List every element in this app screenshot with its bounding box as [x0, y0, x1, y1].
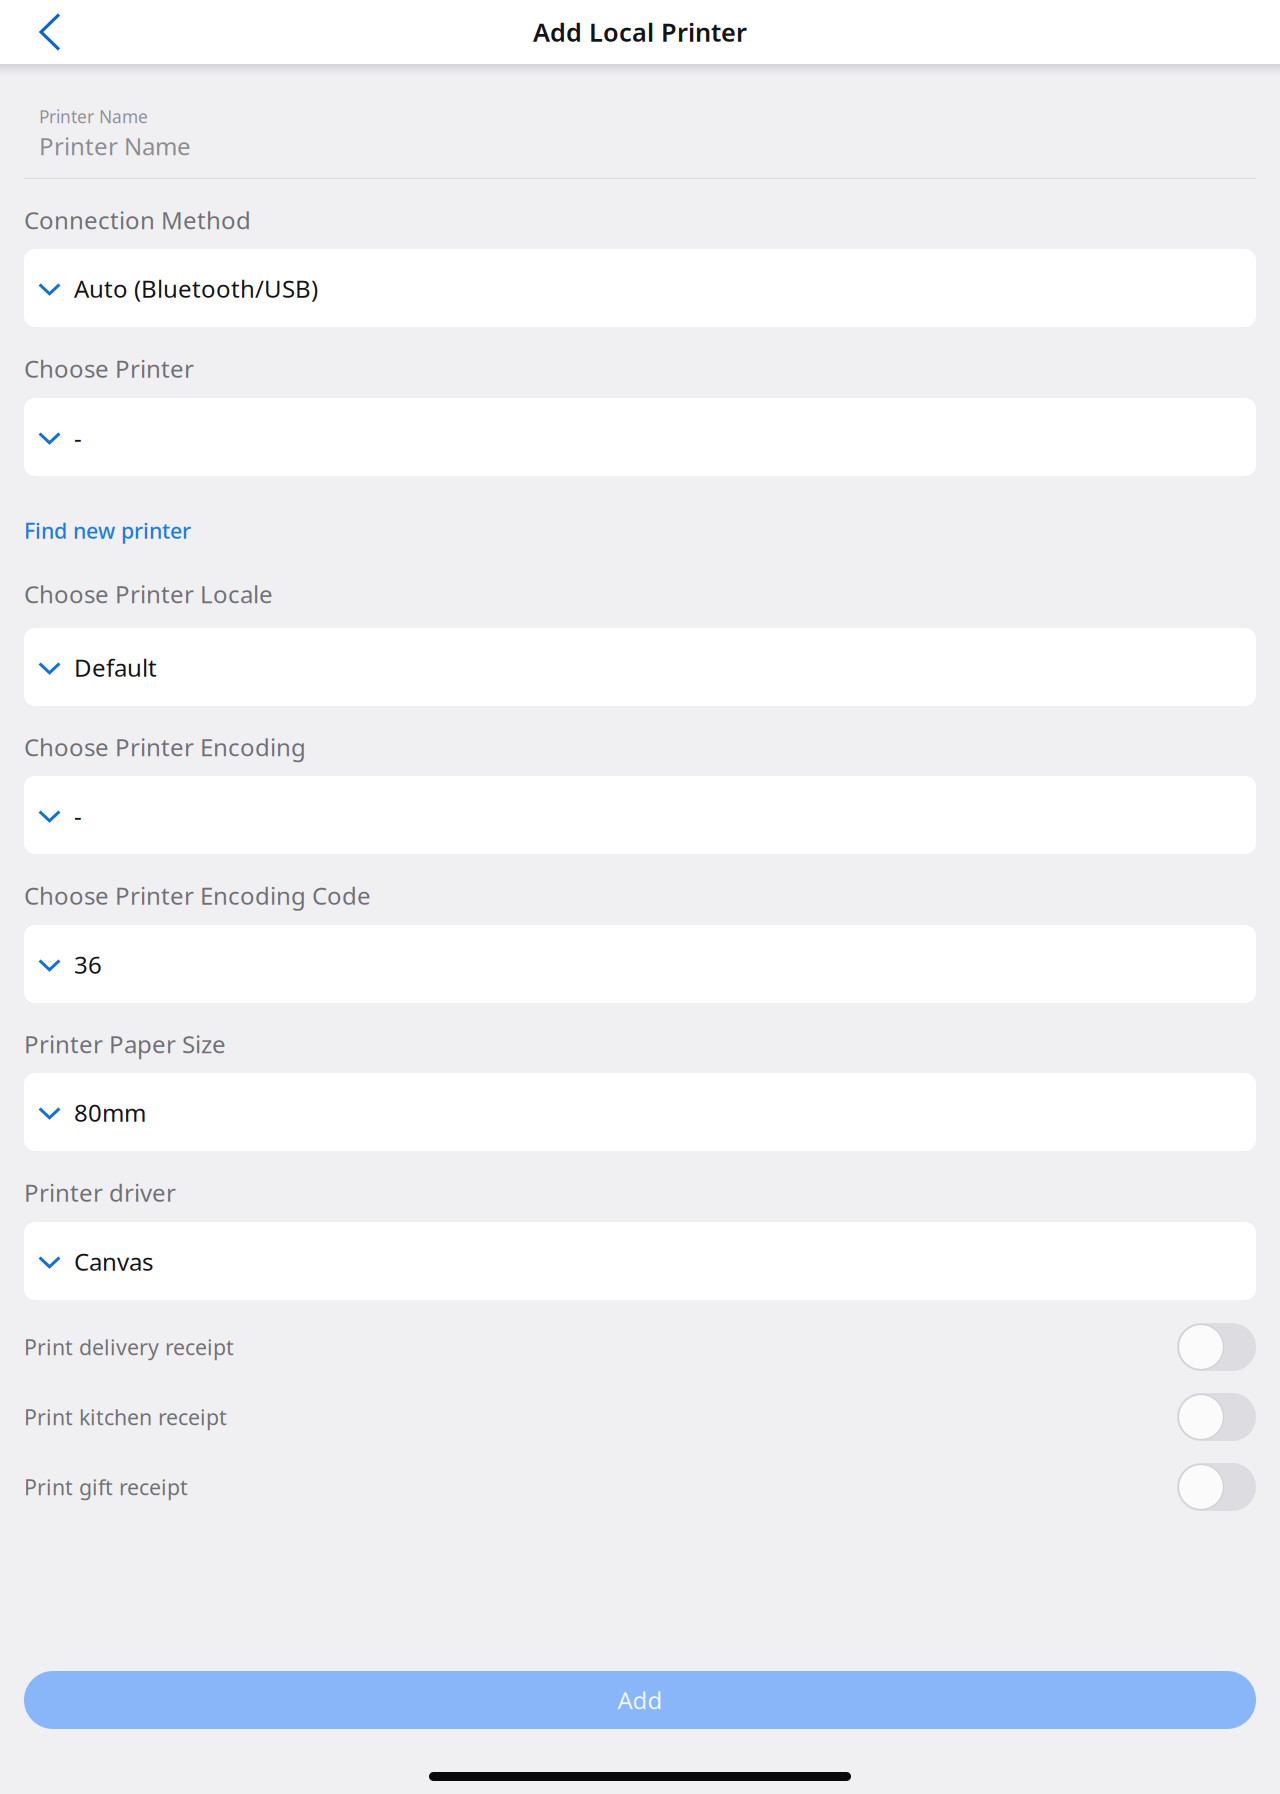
staticText: Add Local Printer — [533, 15, 747, 49]
button[interactable]: 36 — [24, 925, 1256, 1003]
button[interactable]: Default — [24, 628, 1256, 706]
staticText: Print kitchen receipt — [24, 1403, 227, 1431]
button[interactable]: Canvas — [24, 1222, 1256, 1300]
staticText: Default — [74, 652, 157, 683]
staticText: - — [74, 422, 82, 453]
staticText: Add — [617, 1684, 662, 1716]
staticText: Auto (Bluetooth/USB) — [74, 273, 318, 304]
staticText: Printer driver — [24, 1177, 176, 1208]
button[interactable]: Back — [0, 0, 100, 64]
staticText: Choose Printer Encoding Code — [24, 880, 371, 911]
button[interactable]: Printer Name — [24, 64, 1256, 179]
staticText: Printer Name — [39, 130, 191, 158]
button[interactable]: Auto (Bluetooth/USB) — [24, 249, 1256, 327]
button[interactable]: Print kitchen receipt — [24, 1382, 1256, 1452]
button[interactable]: - — [24, 776, 1256, 854]
staticText: Choose Printer — [24, 353, 194, 384]
staticText: Printer Paper Size — [24, 1028, 226, 1060]
staticText: Choose Printer Locale — [24, 578, 273, 610]
button[interactable]: Find new printer — [24, 476, 1256, 548]
staticText: Print gift receipt — [24, 1473, 188, 1501]
button[interactable]: 80mm — [24, 1073, 1256, 1151]
button[interactable]: Print delivery receipt — [24, 1312, 1256, 1382]
button[interactable]: Print gift receipt — [24, 1452, 1256, 1522]
staticText: - — [74, 800, 82, 831]
staticText: Print delivery receipt — [24, 1333, 234, 1361]
staticText: 36 — [74, 949, 102, 980]
staticText: Canvas — [74, 1246, 153, 1277]
staticText: Connection Method — [24, 204, 251, 236]
button[interactable]: - — [24, 398, 1256, 476]
staticText: Find new printer — [24, 516, 191, 545]
button[interactable]: Add — [24, 1671, 1256, 1729]
staticText: Choose Printer Encoding — [24, 731, 306, 763]
staticText: 80mm — [74, 1097, 146, 1128]
staticText: Printer Name — [39, 105, 148, 126]
